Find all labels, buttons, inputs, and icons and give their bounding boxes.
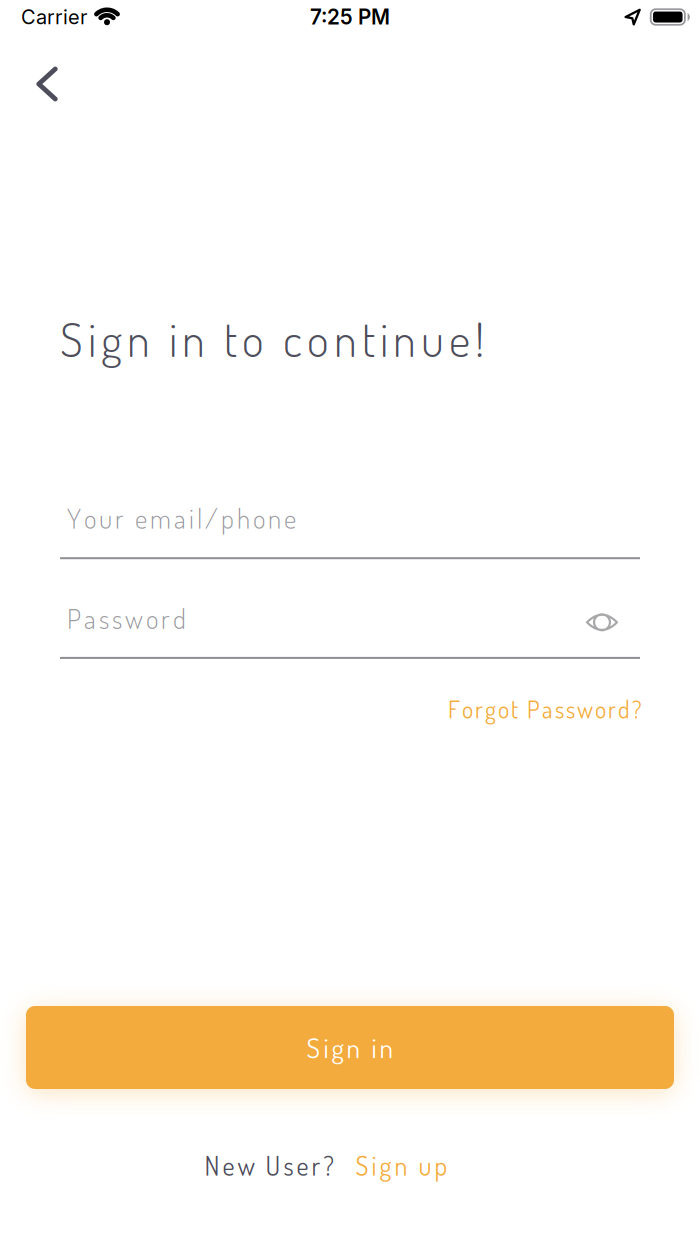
staticText: N e w U s e r ?: [204, 1149, 333, 1182]
button[interactable]: Your email/phone: [0, 501, 700, 559]
staticText: F o r g o t P a s s w o r d ?: [448, 694, 642, 724]
staticText: Carrier: [21, 5, 87, 29]
staticText: Y o u r e m a i l / p h o n e: [67, 501, 296, 535]
button[interactable]: S i g n u p: [355, 1149, 447, 1182]
staticText: S i g n i n: [306, 1030, 393, 1065]
button[interactable]: Back: [25, 62, 69, 106]
staticText: S i g n u p: [355, 1149, 447, 1182]
staticText: P a s s w o r d: [67, 601, 186, 635]
button[interactable]: F o r g o t P a s s w o r d ?: [448, 694, 642, 724]
button[interactable]: Show password: [587, 612, 617, 633]
staticText: 7:25 PM: [310, 4, 390, 29]
button[interactable]: Password: [0, 601, 700, 659]
staticText: S i g n i n t o c o n t i n u e !: [60, 309, 484, 368]
button[interactable]: S i g n i n: [26, 1006, 674, 1089]
